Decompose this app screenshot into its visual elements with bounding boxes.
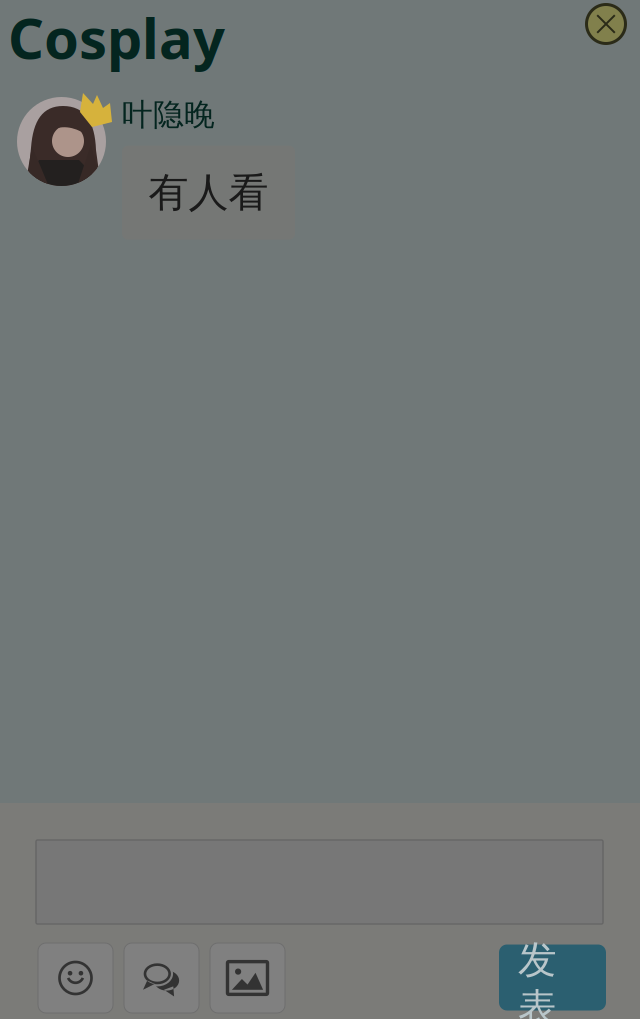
staticText: 发表: [518, 936, 557, 1019]
button[interactable]: 发表: [499, 944, 606, 1011]
button[interactable]: Close: [580, 0, 632, 50]
button[interactable]: Photo: [210, 943, 285, 1013]
staticText: 叶隐晚: [122, 96, 215, 134]
button[interactable]: Sticker: [124, 943, 199, 1013]
staticText: 有人看: [148, 168, 268, 217]
button[interactable]: Emoji: [38, 943, 113, 1013]
staticText: Cosplay: [8, 0, 225, 74]
